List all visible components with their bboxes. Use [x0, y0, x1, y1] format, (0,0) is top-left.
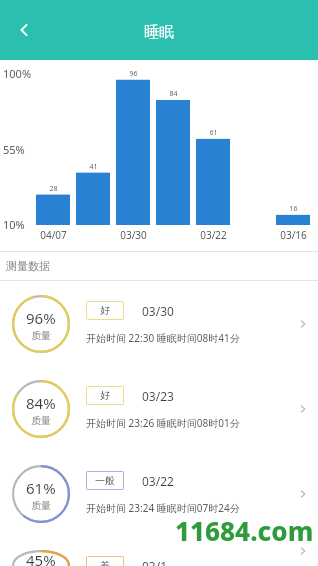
staticText: 45%: [26, 550, 56, 566]
staticText: 开始时间 23:24 睡眠时间07时24分: [86, 501, 240, 515]
staticText: 开始时间 23:26 睡眠时间08时01分: [86, 416, 240, 430]
staticText: 41: [89, 162, 98, 172]
staticText: 84: [169, 89, 178, 99]
button[interactable]: 96%: [0, 281, 318, 366]
staticText: 03/16: [280, 228, 307, 242]
button[interactable]: 84%: [0, 366, 318, 451]
button[interactable]: 45%: [0, 536, 318, 566]
staticText: 11684.com: [175, 513, 314, 548]
staticText: 好: [100, 304, 110, 317]
staticText: 96: [129, 69, 138, 79]
button[interactable]: Back: [4, 10, 44, 50]
staticText: 质量: [31, 329, 51, 342]
other: Details: [292, 540, 314, 562]
staticText: 16: [289, 204, 298, 214]
staticText: 28: [49, 184, 58, 194]
staticText: 61: [209, 128, 218, 138]
staticText: 03/23: [142, 388, 174, 404]
staticText: 测量数据: [6, 259, 50, 273]
other: Details: [292, 398, 314, 420]
staticText: 96%: [26, 308, 56, 328]
other: Details: [292, 313, 314, 335]
staticText: 03/22: [142, 473, 174, 489]
staticText: 差: [100, 559, 110, 566]
staticText: 质量: [31, 414, 51, 427]
staticText: 61%: [26, 478, 56, 498]
staticText: 03/30: [120, 228, 147, 242]
staticText: 03/1: [142, 558, 168, 566]
staticText: 10%: [3, 217, 25, 232]
staticText: 04/07: [40, 228, 67, 242]
staticText: 一般: [95, 474, 115, 487]
button[interactable]: 61%: [0, 451, 318, 536]
staticText: 开始时间 22:30 睡眠时间08时41分: [86, 331, 240, 345]
staticText: 55%: [3, 142, 25, 157]
staticText: 84%: [26, 393, 56, 413]
staticText: 质量: [31, 499, 51, 512]
staticText: 睡眠: [144, 23, 174, 42]
other: Details: [292, 483, 314, 505]
staticText: 03/30: [142, 303, 174, 319]
staticText: 03/22: [200, 228, 227, 242]
staticText: 100%: [3, 66, 32, 81]
staticText: 好: [100, 389, 110, 402]
